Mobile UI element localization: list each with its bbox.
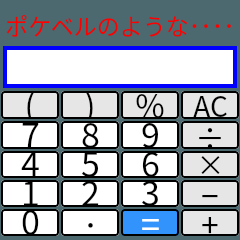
staticText: ポケベルのような････ (5, 8, 235, 41)
staticText: 4 (21, 151, 40, 178)
staticText: 0 (21, 209, 40, 236)
staticText: 5 (81, 151, 100, 178)
staticText: AC (193, 91, 228, 119)
button[interactable]: 0 (1, 209, 59, 236)
staticText: 7 (21, 121, 40, 149)
button[interactable]: 3 (121, 180, 179, 207)
button[interactable]: 6 (121, 151, 179, 178)
button[interactable]: ( (1, 91, 59, 119)
button[interactable]: × (181, 151, 239, 178)
button[interactable]: % (121, 91, 179, 119)
staticText: ・ (79, 209, 102, 236)
button[interactable]: 7 (1, 121, 59, 149)
button[interactable]: 4 (1, 151, 59, 178)
staticText: 3 (141, 180, 160, 207)
button[interactable]: − (181, 180, 239, 207)
staticText: 9 (141, 121, 160, 149)
staticText: − (201, 180, 219, 207)
button[interactable]: 9 (121, 121, 179, 149)
button[interactable]: ÷ (181, 121, 239, 149)
staticText: × (196, 151, 225, 178)
staticText: ( (24, 91, 36, 119)
button[interactable]: ) (61, 91, 119, 119)
staticText: % (135, 91, 165, 119)
staticText: 6 (141, 151, 160, 178)
button[interactable]: 5 (61, 151, 119, 178)
staticText: ) (84, 91, 96, 119)
staticText: = (141, 209, 160, 236)
staticText: ÷ (195, 121, 225, 149)
button[interactable]: AC (181, 91, 239, 119)
button[interactable]: = (121, 209, 179, 236)
staticText: 8 (81, 121, 100, 149)
staticText: 2 (81, 180, 100, 207)
button[interactable]: 2 (61, 180, 119, 207)
button[interactable]: ・ (61, 209, 119, 236)
staticText: + (201, 209, 219, 236)
button[interactable]: + (181, 209, 239, 236)
button[interactable]: 8 (61, 121, 119, 149)
button[interactable]: 1 (1, 180, 59, 207)
staticText: 1 (21, 180, 40, 207)
